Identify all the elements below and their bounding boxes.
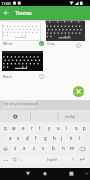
button[interactable]: b [49, 144, 58, 152]
staticText: r [31, 125, 33, 131]
button[interactable] [77, 155, 89, 164]
button[interactable]: ?123 [1, 155, 11, 164]
button[interactable] [39, 74, 44, 79]
button[interactable]: w [10, 124, 18, 132]
staticText: x [23, 145, 26, 151]
button[interactable]: p [80, 124, 88, 132]
button[interactable]: g [41, 134, 49, 142]
button[interactable] [1, 144, 10, 152]
button[interactable]: c [30, 144, 39, 152]
button[interactable] [2, 51, 43, 79]
button[interactable] [40, 169, 50, 179]
button[interactable]: m [68, 144, 77, 152]
button[interactable] [79, 144, 89, 152]
staticText: Themes [15, 10, 32, 16]
staticText: a [9, 135, 12, 141]
staticText: . [65, 157, 66, 162]
button[interactable]: s [14, 134, 22, 142]
staticText: English [47, 158, 58, 162]
staticText: l [79, 135, 81, 141]
staticText: v [42, 145, 45, 151]
button[interactable] [2, 21, 41, 41]
staticText: c [33, 145, 36, 151]
button[interactable] [39, 41, 44, 46]
staticText: q [4, 125, 7, 131]
staticText: w [12, 125, 16, 131]
button[interactable] [1, 8, 11, 18]
staticText: Gray [47, 41, 55, 46]
staticText: i [66, 125, 68, 131]
button[interactable] [76, 43, 81, 48]
staticText: k [70, 135, 73, 141]
staticText: y [48, 125, 51, 131]
staticText: j [61, 135, 63, 141]
button[interactable]: o [72, 124, 80, 132]
staticText: p [83, 125, 86, 131]
button[interactable]: i [63, 124, 71, 132]
staticText: f [35, 135, 37, 141]
button[interactable] [73, 86, 84, 97]
button[interactable] [2, 51, 43, 71]
button[interactable]: z [11, 144, 20, 152]
button[interactable]: e [19, 124, 27, 132]
button[interactable] [0, 100, 90, 110]
button[interactable] [11, 155, 18, 164]
staticText: White [3, 41, 13, 46]
button[interactable] [2, 21, 43, 47]
button[interactable]: a [6, 134, 14, 142]
button[interactable]: h [50, 134, 58, 142]
staticText: n [62, 145, 65, 151]
staticText: mellip [65, 114, 75, 119]
button[interactable]: ? [69, 155, 76, 164]
button[interactable] [46, 21, 85, 41]
staticText: b [52, 145, 55, 151]
button[interactable]: q [1, 124, 9, 132]
staticText: Black [3, 74, 12, 79]
button[interactable] [26, 155, 61, 164]
staticText: ? [72, 158, 74, 162]
button[interactable] [22, 169, 32, 179]
staticText: e [22, 125, 25, 131]
staticText: z [14, 145, 17, 151]
staticText: m [70, 145, 75, 151]
button[interactable] [66, 169, 76, 179]
button[interactable]: f [32, 134, 40, 142]
button[interactable]: n [59, 144, 68, 152]
staticText: 11:00 [1, 1, 11, 6]
button[interactable]: x [20, 144, 29, 152]
button[interactable] [46, 21, 85, 49]
button[interactable]: j [58, 134, 66, 142]
staticText: Try out your keyboard [3, 101, 38, 106]
button[interactable]: t [36, 124, 44, 132]
button[interactable]: d [23, 134, 31, 142]
button[interactable] [9, 111, 21, 121]
button[interactable]: r [28, 124, 36, 132]
staticText: s [17, 135, 20, 141]
staticText: ?123 [3, 158, 9, 161]
button[interactable]: y [45, 124, 53, 132]
staticText: t [39, 125, 41, 131]
staticText: h [53, 135, 56, 141]
button[interactable] [19, 155, 26, 164]
button[interactable]: l [76, 134, 84, 142]
staticText: d [26, 135, 29, 141]
button[interactable]: k [67, 134, 75, 142]
staticText: g [44, 135, 47, 141]
button[interactable]: u [54, 124, 62, 132]
staticText: u [57, 125, 60, 131]
button[interactable]: v [39, 144, 48, 152]
staticText: o [75, 125, 78, 131]
button[interactable]: . [62, 155, 69, 164]
